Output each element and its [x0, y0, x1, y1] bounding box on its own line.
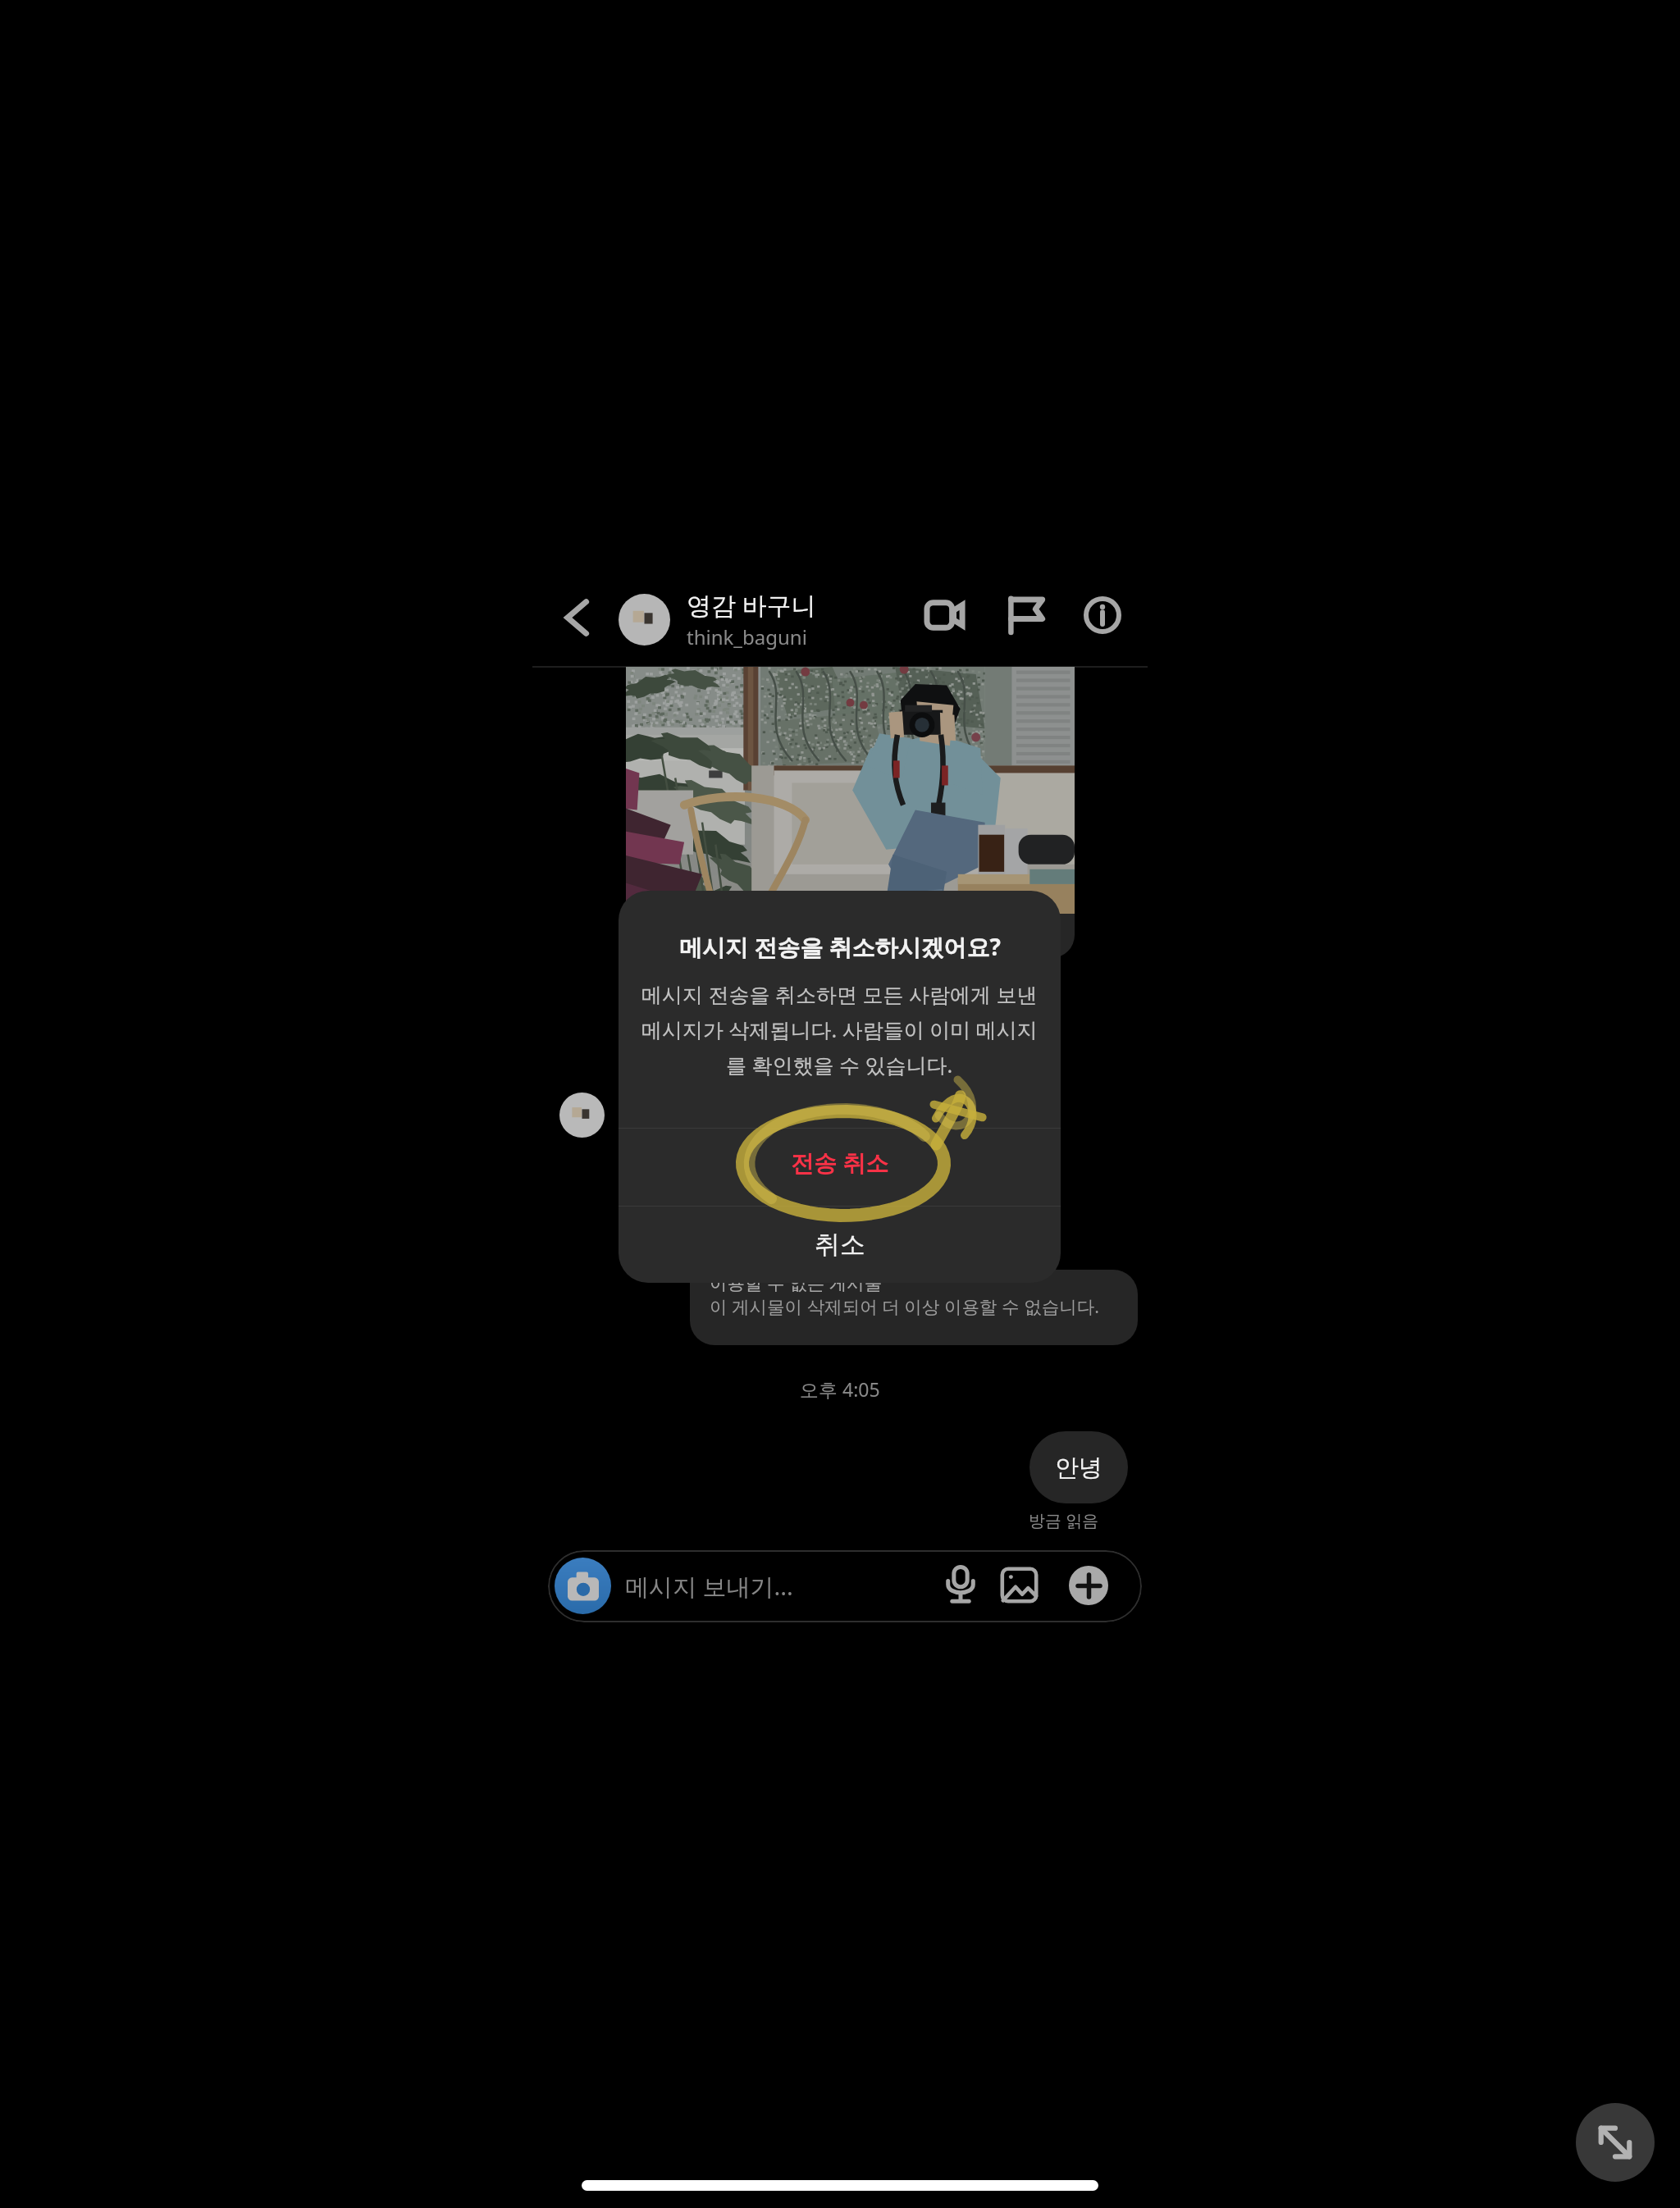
button[interactable]: Report — [994, 584, 1057, 646]
staticText: 메시지 전송을 취소하시겠어요? — [679, 931, 1001, 962]
button[interactable]: Camera — [548, 1550, 1142, 1622]
button[interactable]: Camera — [555, 1558, 611, 1614]
staticText: 메시지 보내기... — [625, 1570, 793, 1603]
staticText: think_baguni — [687, 623, 807, 650]
staticText: 이용할 수 없는 게시물 — [710, 1271, 883, 1294]
button[interactable]: 이용할 수 없는 게시물 — [690, 1270, 1138, 1345]
button[interactable]: 안녕 — [1029, 1431, 1128, 1503]
staticText: 이 게시물이 삭제되어 더 이상 이용할 수 없습니다. — [710, 1294, 1099, 1318]
staticText: 영감 바구니 — [687, 588, 816, 622]
staticText: 메시지 전송을 취소하면 모든 사람에게 보낸 — [641, 980, 1038, 1008]
staticText: 메시지가 삭제됩니다. 사람들이 이미 메시지 — [641, 1015, 1038, 1043]
button[interactable]: Video call — [913, 584, 975, 646]
button[interactable]: Voice message — [934, 1558, 987, 1611]
button[interactable]: 전송 취소 — [619, 1123, 1061, 1201]
button[interactable]: think_baguni profile picture — [559, 1093, 605, 1138]
button[interactable]: Expand — [1576, 2103, 1655, 2182]
button[interactable]: 취소 — [619, 1206, 1061, 1283]
button[interactable]: Profile picture — [619, 594, 670, 646]
button[interactable]: Info — [1071, 584, 1134, 646]
button[interactable]: Gallery — [993, 1558, 1045, 1611]
staticText: 방금 읽음 — [1029, 1509, 1099, 1531]
staticText: 를 확인했을 수 있습니다. — [726, 1051, 953, 1079]
button[interactable]: Back — [548, 590, 604, 646]
staticText: 안녕 — [1055, 1453, 1102, 1483]
staticText: 전송 취소 — [791, 1147, 889, 1178]
button[interactable]: Shared photo — [626, 667, 1075, 958]
staticText: 취소 — [815, 1229, 865, 1261]
staticText: 오후 4:05 — [800, 1376, 880, 1402]
button[interactable]: More options — [1069, 1566, 1108, 1605]
